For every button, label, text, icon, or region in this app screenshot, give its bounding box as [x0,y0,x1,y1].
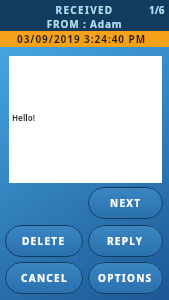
staticText: Hello! [12,112,35,123]
staticText: DELETE [22,234,66,248]
staticText: 03/09/2019 3:24:40 PM [17,32,147,46]
button[interactable]: CANCEL [5,262,83,294]
staticText: FROM : Adam [0,17,169,31]
staticText: REPLY [107,234,144,248]
staticText: CANCEL [21,271,68,285]
button[interactable]: REPLY [88,225,163,257]
button[interactable]: NEXT [88,187,163,219]
button[interactable]: OPTIONS [88,262,163,294]
staticText: OPTIONS [98,271,153,285]
staticText: 1/6 [149,3,165,17]
staticText: NEXT [110,196,142,210]
staticText: RECEIVED [0,3,169,17]
button[interactable]: DELETE [5,225,83,257]
